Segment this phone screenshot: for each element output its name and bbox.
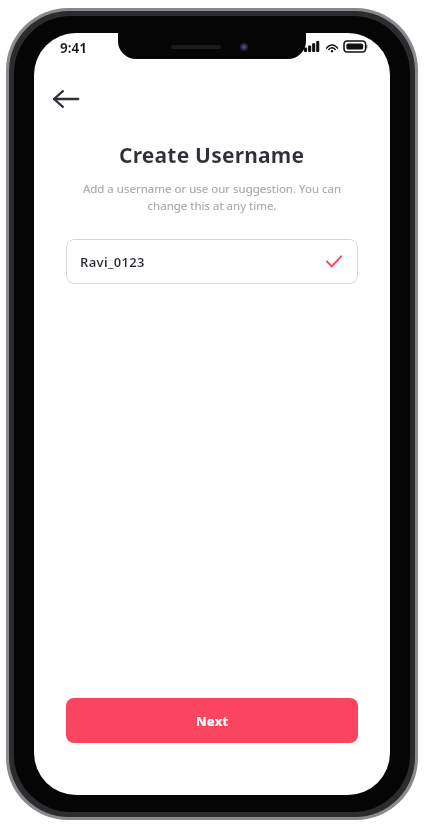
staticText: Ravi_0123: [80, 253, 145, 271]
staticText: Create Username: [119, 141, 305, 170]
button[interactable]: Back: [44, 77, 88, 121]
button[interactable]: Ravi_0123: [66, 239, 358, 284]
staticText: Add a username or use our suggestion. Yo…: [64, 181, 360, 214]
staticText: Next: [196, 712, 229, 730]
button[interactable]: Next: [66, 698, 358, 743]
staticText: 9:41: [60, 39, 87, 57]
